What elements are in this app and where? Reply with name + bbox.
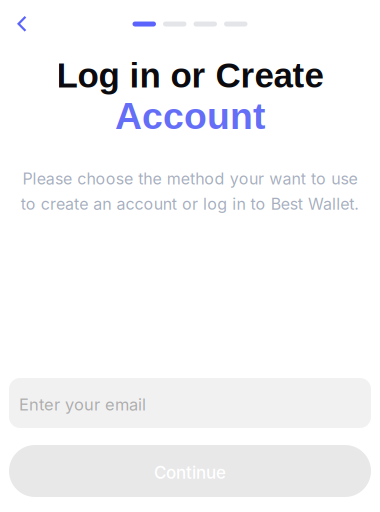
staticText: to create an account or log in to Best W… bbox=[21, 194, 359, 214]
staticText: Log in or Create bbox=[56, 56, 323, 95]
staticText: Please choose the method your want to us… bbox=[22, 169, 358, 188]
staticText: Enter your email bbox=[19, 395, 146, 414]
staticText: Account bbox=[115, 95, 265, 137]
button[interactable]: Back bbox=[7, 8, 37, 38]
staticText: Continue bbox=[154, 462, 226, 483]
button[interactable]: Continue bbox=[9, 445, 371, 497]
